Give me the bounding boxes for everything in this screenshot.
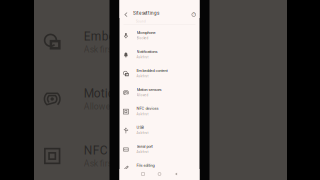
staticText: Motion sensors — [136, 87, 161, 92]
button[interactable]: Recent apps — [139, 170, 147, 178]
button[interactable]: Back — [122, 10, 130, 19]
button[interactable]: NFC devices — [119, 101, 199, 120]
staticText: Allowed — [84, 101, 116, 112]
button[interactable]: Embedded content — [119, 64, 199, 82]
staticText: Ask first — [84, 44, 115, 55]
button[interactable]: Back — [172, 170, 180, 178]
staticText: ? — [193, 13, 194, 16]
staticText: Microphone — [136, 30, 155, 35]
button[interactable]: Notifications — [119, 45, 199, 64]
button[interactable]: USB — [119, 120, 199, 139]
button[interactable]: Home — [155, 170, 163, 178]
button[interactable]: Motion sensors — [119, 83, 199, 101]
staticText: USB — [136, 125, 143, 130]
staticText: Embedded content — [136, 68, 167, 73]
staticText: NFC devices — [136, 106, 158, 111]
staticText: Blocked — [136, 37, 148, 40]
staticText: Ask first — [136, 150, 148, 154]
staticText: NFC devices — [84, 143, 151, 157]
staticText: Embedded content — [84, 29, 186, 43]
button[interactable]: Serial port — [119, 139, 199, 158]
staticText: File editing — [136, 163, 154, 168]
button[interactable]: Microphone — [119, 26, 199, 45]
staticText: Ask first — [136, 74, 148, 78]
staticText: Ask first — [84, 158, 115, 169]
staticText: Ask first — [136, 112, 148, 116]
staticText: Ask first — [136, 131, 148, 135]
staticText: Serial port — [136, 144, 152, 149]
button[interactable]: Help — [189, 10, 198, 19]
button[interactable]: Site settings — [133, 9, 173, 17]
staticText: Notifications — [136, 49, 157, 54]
staticText: Site settings — [133, 10, 159, 16]
staticText: Allowed — [136, 93, 148, 97]
staticText: Motion sensors — [84, 86, 167, 100]
button[interactable]: File editing — [119, 158, 199, 177]
staticText: Sound — [136, 20, 146, 23]
staticText: Ask first — [136, 169, 148, 173]
staticText: Ask first — [136, 56, 148, 59]
